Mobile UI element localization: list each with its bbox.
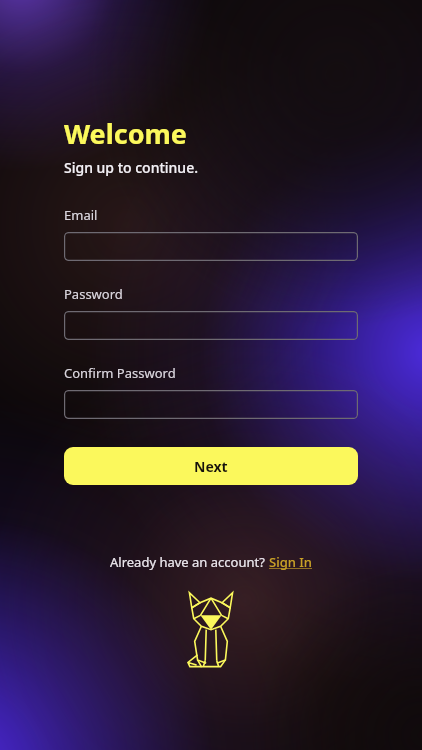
button[interactable]	[64, 232, 358, 261]
other: Fox logo	[187, 591, 235, 675]
staticText: Confirm Password	[64, 364, 176, 382]
staticText: Password	[64, 285, 123, 303]
button[interactable]: Next	[64, 447, 358, 485]
staticText: Welcome	[64, 115, 187, 152]
button[interactable]	[64, 311, 358, 340]
button[interactable]: Sign In	[269, 553, 313, 571]
staticText: Next	[194, 457, 228, 476]
staticText: Sign In	[269, 553, 313, 571]
staticText: Already have an account?	[110, 553, 269, 571]
staticText: Sign up to continue.	[64, 158, 198, 177]
staticText: Email	[64, 206, 98, 224]
button[interactable]	[64, 390, 358, 419]
